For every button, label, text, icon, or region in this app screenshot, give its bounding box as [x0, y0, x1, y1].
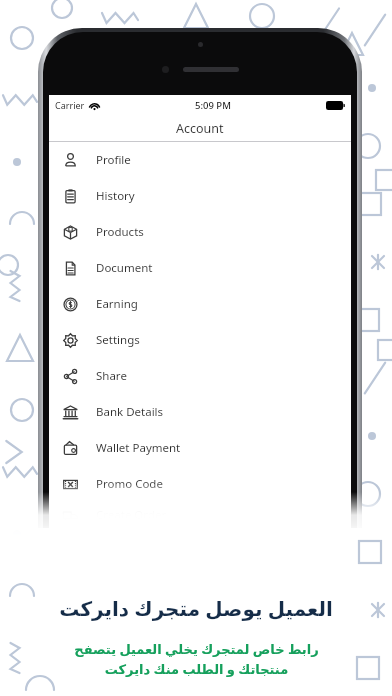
- staticText: Earning: [96, 296, 138, 312]
- button[interactable]: Products: [49, 214, 351, 250]
- staticText: Bank Details: [96, 404, 164, 420]
- staticText: Profile: [96, 152, 131, 168]
- staticText: Carrier: [55, 99, 85, 111]
- staticText: Products: [96, 224, 144, 240]
- button[interactable]: Document: [49, 250, 351, 286]
- staticText: Document: [96, 260, 153, 276]
- staticText: Settings: [96, 332, 140, 348]
- button[interactable]: Profile: [49, 142, 351, 178]
- button[interactable]: History: [49, 178, 351, 214]
- button[interactable]: Share: [49, 358, 351, 394]
- button[interactable]: Promo Code: [49, 466, 351, 502]
- staticText: Account: [176, 120, 224, 137]
- staticText: History: [96, 188, 135, 204]
- button[interactable]: Wallet Payment: [49, 430, 351, 466]
- staticText: Promo Code: [96, 476, 163, 492]
- staticText: العميل يوصل متجرك دايركت: [59, 595, 333, 622]
- button[interactable]: Settings: [49, 322, 351, 358]
- button[interactable]: Earning: [49, 286, 351, 322]
- button[interactable]: Bank Details: [49, 394, 351, 430]
- staticText: رابط خاص لمتجرك يخلي العميل يتصفح منتجات…: [74, 640, 319, 678]
- staticText: Share: [96, 368, 127, 384]
- staticText: Wallet Payment: [96, 440, 181, 456]
- staticText: 5:09 PM: [195, 99, 231, 112]
